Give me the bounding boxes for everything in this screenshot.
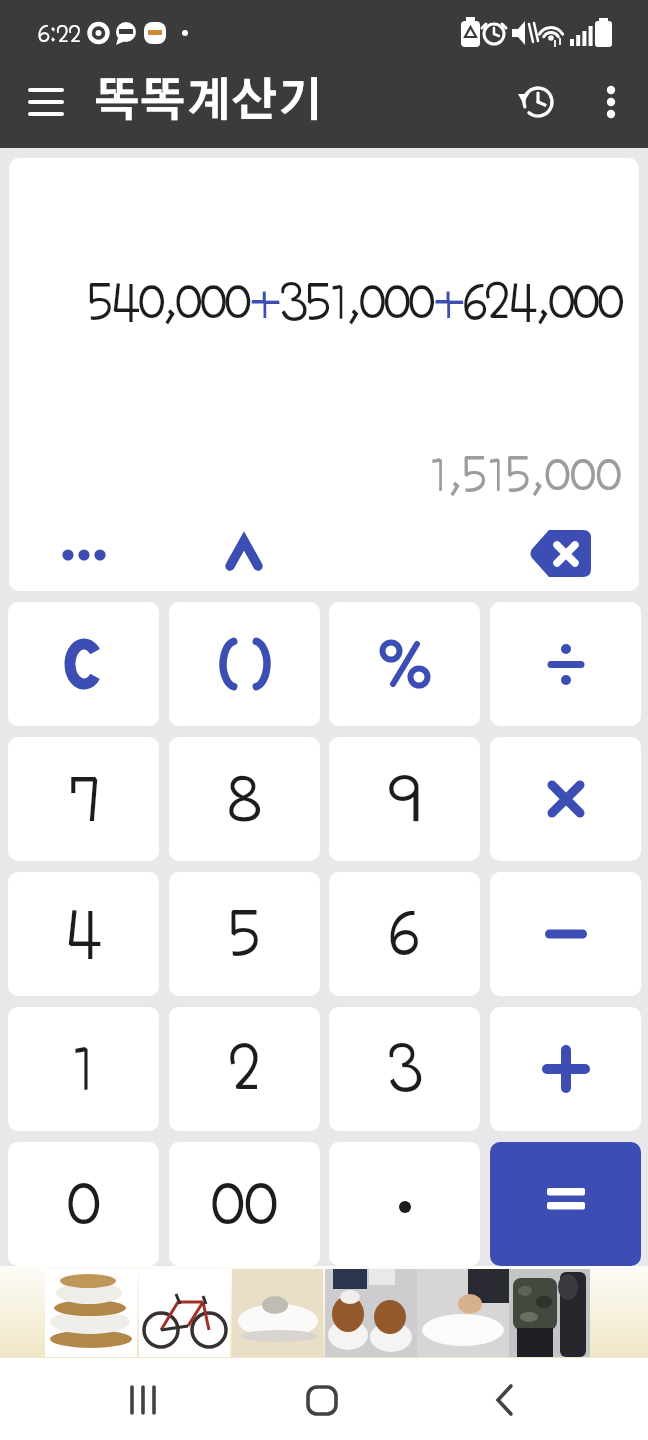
staticText: 540,000+351,000+624,000 [87, 274, 622, 330]
button[interactable]: 7 [8, 737, 159, 861]
staticText: 똑똑계산기 [94, 79, 324, 125]
staticText: 1,515,000 [429, 448, 622, 502]
staticText: 4 [65, 899, 102, 969]
button[interactable]: 4 [8, 872, 159, 996]
staticText: 6 [389, 899, 420, 969]
button[interactable]: 3 [329, 1007, 480, 1131]
button[interactable] [490, 872, 641, 996]
button[interactable] [169, 602, 320, 726]
staticText: 2 [229, 1034, 261, 1104]
button[interactable]: 8 [169, 737, 320, 861]
button[interactable] [57, 538, 119, 570]
button[interactable]: 2 [169, 1007, 320, 1131]
staticText: 1 [71, 1034, 96, 1104]
staticText: 6:22 [38, 20, 81, 47]
button[interactable] [296, 1374, 348, 1426]
staticText: 3 [387, 1034, 422, 1104]
button[interactable] [490, 1007, 641, 1131]
button[interactable] [329, 602, 480, 726]
button[interactable] [480, 1374, 532, 1426]
staticText: 0 [67, 1169, 101, 1239]
button[interactable]: 0 [8, 1142, 159, 1266]
button[interactable]: 6 [329, 872, 480, 996]
button[interactable] [490, 602, 641, 726]
button[interactable] [0, 1266, 648, 1358]
button[interactable] [329, 1142, 480, 1266]
button[interactable] [24, 80, 68, 124]
button[interactable]: 5 [169, 872, 320, 996]
button[interactable] [8, 602, 159, 726]
button[interactable]: 00 [169, 1142, 320, 1266]
button[interactable] [490, 737, 641, 861]
staticText: 7 [68, 764, 100, 834]
staticText: 9 [388, 764, 421, 834]
staticText: 5 [228, 899, 261, 969]
button[interactable] [592, 82, 630, 122]
button[interactable] [518, 82, 558, 122]
staticText: 00 [211, 1169, 278, 1239]
button[interactable] [225, 530, 265, 574]
button[interactable]: 1 [8, 1007, 159, 1131]
button[interactable] [490, 1142, 641, 1266]
button[interactable]: 9 [329, 737, 480, 861]
button[interactable] [117, 1374, 169, 1426]
staticText: 8 [227, 764, 262, 834]
button[interactable] [529, 530, 591, 577]
